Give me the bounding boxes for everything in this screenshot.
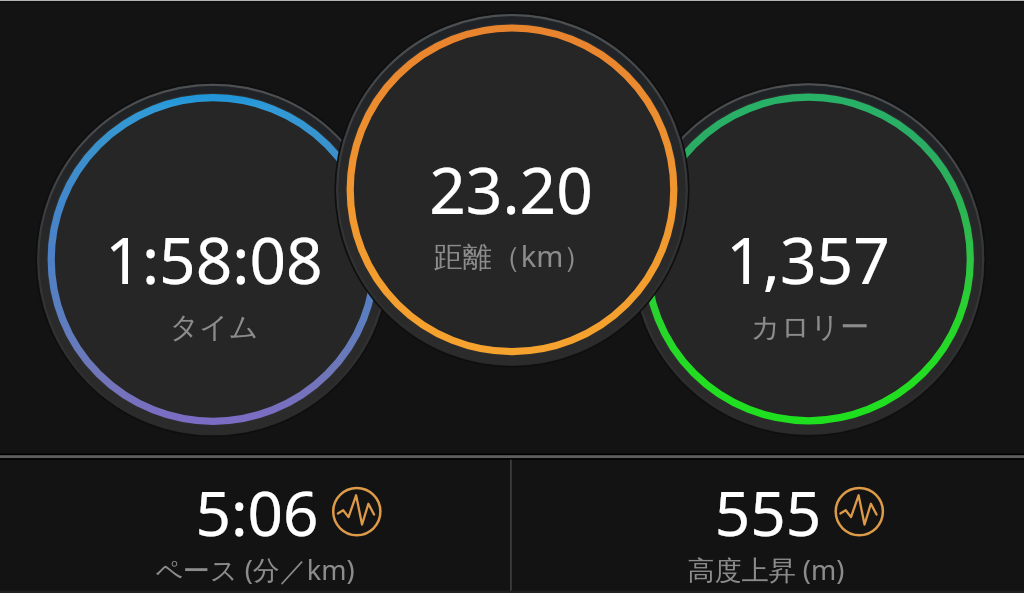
staticText: 23.20 <box>281 146 741 233</box>
staticText: 高度上昇 (m) <box>536 551 996 588</box>
staticText: ペース (分／km) <box>25 551 485 588</box>
staticText: 距離（km） <box>283 236 743 276</box>
staticText: 1,357 <box>578 216 1024 303</box>
staticText: 5:06 <box>27 470 487 554</box>
staticText: タイム <box>0 309 444 346</box>
staticText: カロリー <box>580 309 1024 346</box>
staticText: 1:58:08 <box>0 216 444 303</box>
staticText: 555 <box>538 470 998 554</box>
